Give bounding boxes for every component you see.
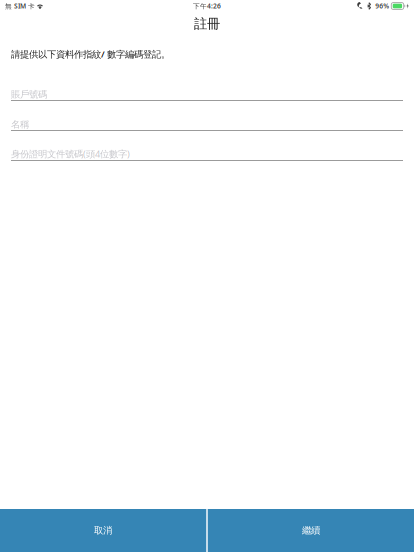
staticText: 96% [375, 2, 389, 10]
button[interactable]: 賬戶號碼 [11, 86, 403, 101]
staticText: 註冊 [194, 16, 220, 32]
button[interactable]: 取消 [0, 509, 206, 552]
staticText: 下午4:26 [193, 2, 221, 10]
staticText: 身份證明文件號碼(頭4位數字) [11, 148, 130, 160]
staticText: 繼續 [302, 525, 320, 536]
staticText: 請提供以下資料作指紋/ 數字編碼登記。 [11, 48, 170, 60]
staticText: 無 SIM 卡 [5, 2, 35, 10]
staticText: 取消 [94, 525, 112, 536]
button[interactable]: 繼續 [208, 509, 414, 552]
staticText: 名稱 [11, 118, 29, 130]
button[interactable]: 身份證明文件號碼(頭4位數字) [11, 146, 403, 161]
staticText: 賬戶號碼 [11, 88, 47, 100]
button[interactable]: 名稱 [11, 116, 403, 131]
